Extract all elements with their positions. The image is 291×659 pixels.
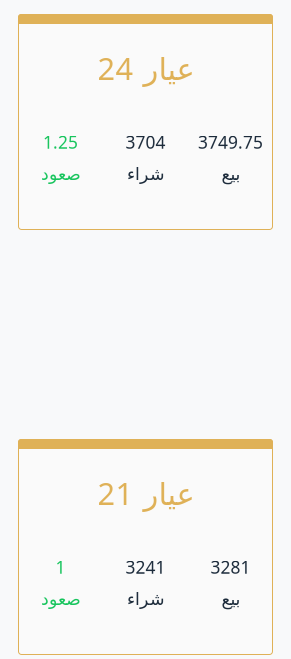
staticText: شراء [126,589,164,609]
staticText: صعود [40,164,80,184]
staticText: 3704 [125,130,165,153]
staticText: شراء [126,164,164,184]
button[interactable]: عيار 24 [18,14,273,230]
staticText: 3241 [125,555,165,578]
staticText: بيع [221,589,240,609]
staticText: 1.25 [43,130,78,153]
staticText: 1 [55,555,65,578]
staticText: عيار 21 [97,473,194,513]
staticText: صعود [40,589,80,609]
staticText: بيع [221,164,240,184]
button[interactable]: عيار 21 [18,439,273,655]
staticText: 3281 [210,555,250,578]
staticText: عيار 24 [97,48,194,88]
staticText: 3749.75 [198,130,263,153]
